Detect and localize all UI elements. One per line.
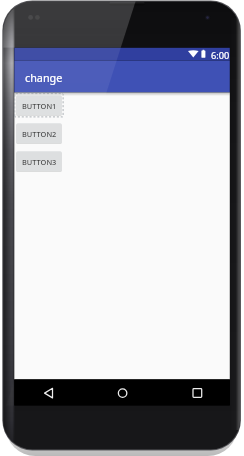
staticText: 6:00	[211, 49, 230, 62]
button[interactable]	[16, 95, 62, 115]
staticText: change	[25, 70, 63, 85]
staticText: BUTTON1	[22, 101, 57, 111]
button[interactable]	[16, 123, 62, 143]
button[interactable]: Recents	[158, 379, 230, 405]
staticText: BUTTON2	[22, 129, 57, 139]
staticText: BUTTON3	[22, 157, 57, 167]
button[interactable]: Home	[86, 379, 158, 405]
button[interactable]	[14, 61, 230, 93]
button[interactable]	[16, 151, 62, 171]
button[interactable]: Back	[14, 379, 86, 405]
